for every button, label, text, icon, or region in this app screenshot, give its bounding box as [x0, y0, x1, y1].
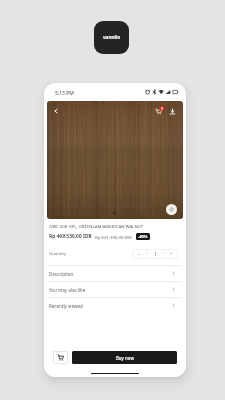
staticText: Rp 621.100,00 IDR: [95, 234, 132, 240]
button[interactable]: You may also like: [44, 282, 186, 297]
staticText: 5:13 PM: [55, 90, 74, 97]
staticText: Description: [49, 271, 74, 277]
staticText: Buy now: [116, 355, 134, 361]
button[interactable]: Expand image: [166, 204, 177, 215]
staticText: vannilo: [103, 34, 121, 41]
button[interactable]: Increase quantity: [164, 249, 178, 259]
staticText: GWC 608 HPL, GREENLAM AMERICAN WALNUT: [49, 223, 144, 229]
button[interactable]: Description: [44, 266, 186, 281]
button[interactable]: Brand logo: [94, 21, 129, 54]
button[interactable]: Share: [165, 104, 179, 118]
button[interactable]: Decrease quantity: [132, 249, 146, 259]
staticText: Quantity: [49, 251, 67, 257]
staticText: Rp 469.530,00 IDR: [49, 233, 92, 240]
staticText: +: [170, 251, 173, 257]
button[interactable]: Cart: [151, 104, 165, 118]
button[interactable]: Buy now: [72, 351, 177, 364]
staticText: 1: [161, 107, 163, 111]
staticText: 1: [154, 251, 157, 257]
button[interactable]: Recently viewed: [44, 298, 186, 313]
staticText: You may also like: [49, 287, 86, 293]
staticText: -40%: [138, 234, 148, 239]
button[interactable]: Back: [49, 104, 63, 118]
staticText: Recently viewed: [49, 303, 83, 309]
staticText: –: [138, 251, 141, 257]
button[interactable]: Add to cart: [53, 351, 68, 364]
